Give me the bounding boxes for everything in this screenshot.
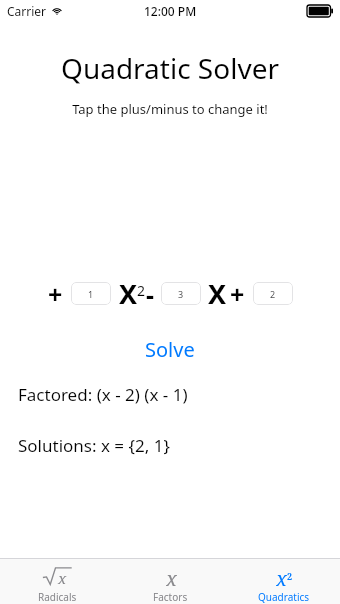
staticText: X <box>208 275 227 312</box>
staticText: Quadratic Solver <box>0 49 340 87</box>
staticText: + <box>230 277 245 311</box>
button[interactable]: Coefficient 1 <box>71 282 111 305</box>
staticText: 1 <box>88 288 94 300</box>
staticText: - <box>146 277 155 311</box>
button[interactable]: Coefficient 2 <box>253 282 293 305</box>
button[interactable]: Toggle sign of constant term <box>230 277 245 311</box>
staticText: x2 <box>276 565 293 587</box>
button[interactable]: x <box>0 559 114 604</box>
staticText: + <box>48 277 63 311</box>
button[interactable]: Solve <box>131 333 209 366</box>
staticText: 2 <box>270 288 276 300</box>
staticText: x <box>166 565 177 587</box>
staticText: x <box>58 568 67 588</box>
staticText: Solutions: x = {2, 1} <box>18 434 170 457</box>
staticText: Factored: (x - 2) (x - 1) <box>18 383 188 406</box>
staticText: 3 <box>178 288 184 300</box>
staticText: X2 <box>119 275 146 312</box>
button[interactable]: x <box>114 559 227 604</box>
staticText: Radicals <box>38 590 77 604</box>
button[interactable]: x2 <box>227 559 340 604</box>
staticText: Factors <box>153 590 188 604</box>
button[interactable]: Toggle sign of squared term <box>48 277 63 311</box>
staticText: Solve <box>145 336 195 363</box>
button[interactable]: Toggle sign of linear term <box>146 277 155 311</box>
staticText: Quadratics <box>258 590 310 604</box>
staticText: 12:00 PM <box>144 3 197 19</box>
staticText: Tap the plus/minus to change it! <box>0 100 340 118</box>
staticText: Carrier <box>7 3 47 19</box>
button[interactable]: Coefficient 3 <box>161 282 201 305</box>
